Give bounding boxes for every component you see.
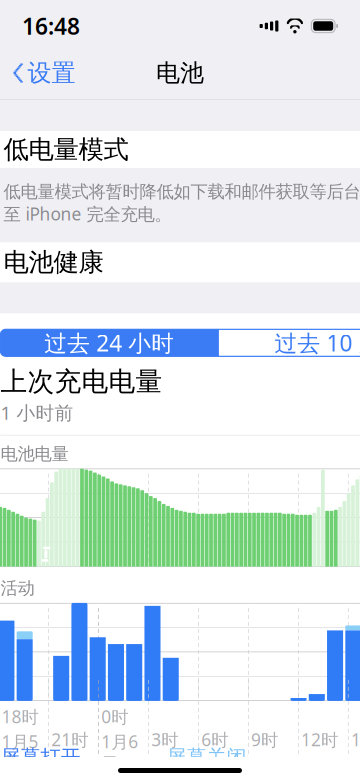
staticText: 屏幕关闭 <box>166 745 246 769</box>
staticText: 3时 <box>151 728 178 751</box>
staticText: 18时 <box>1 705 38 728</box>
staticText: 1月5日 <box>1 730 38 774</box>
staticText: 电池 <box>156 58 204 88</box>
staticText: 1月6日 <box>101 730 138 774</box>
staticText: 过去 24 小时 <box>44 328 174 358</box>
staticText: 电池健康 <box>3 247 103 278</box>
staticText: 低电量模式将暂时降低如下载和邮件获取等后台活动，直至 iPhone 完全充电。 <box>3 181 360 225</box>
staticText: 15时 <box>351 728 360 751</box>
staticText: 设置 <box>27 58 75 88</box>
button[interactable]: 过去 10 天 <box>219 329 360 356</box>
staticText: 16:48 <box>22 11 80 41</box>
button[interactable]: 设置 <box>0 49 85 97</box>
staticText: 过去 10 天 <box>274 328 360 358</box>
button[interactable]: 过去 24 小时 <box>0 329 218 356</box>
staticText: 低电量模式 <box>3 134 128 165</box>
staticText: 1 小时前 <box>0 400 73 425</box>
button[interactable]: 低电量模式 <box>0 131 360 168</box>
staticText: 上次充电电量 <box>0 365 162 398</box>
staticText: 11分钟 <box>166 770 254 779</box>
staticText: 12时 <box>301 728 338 751</box>
staticText: 电池电量 <box>0 443 68 465</box>
staticText: 0时 <box>101 705 128 728</box>
staticText: 9小时20分钟 <box>0 770 160 779</box>
staticText: 6时 <box>201 728 228 751</box>
staticText: 活动 <box>0 578 34 599</box>
staticText: 9时 <box>251 728 278 751</box>
staticText: 屏幕打开 <box>0 745 80 769</box>
staticText: 21时 <box>51 728 88 751</box>
button[interactable]: 电池健康 <box>0 242 360 282</box>
